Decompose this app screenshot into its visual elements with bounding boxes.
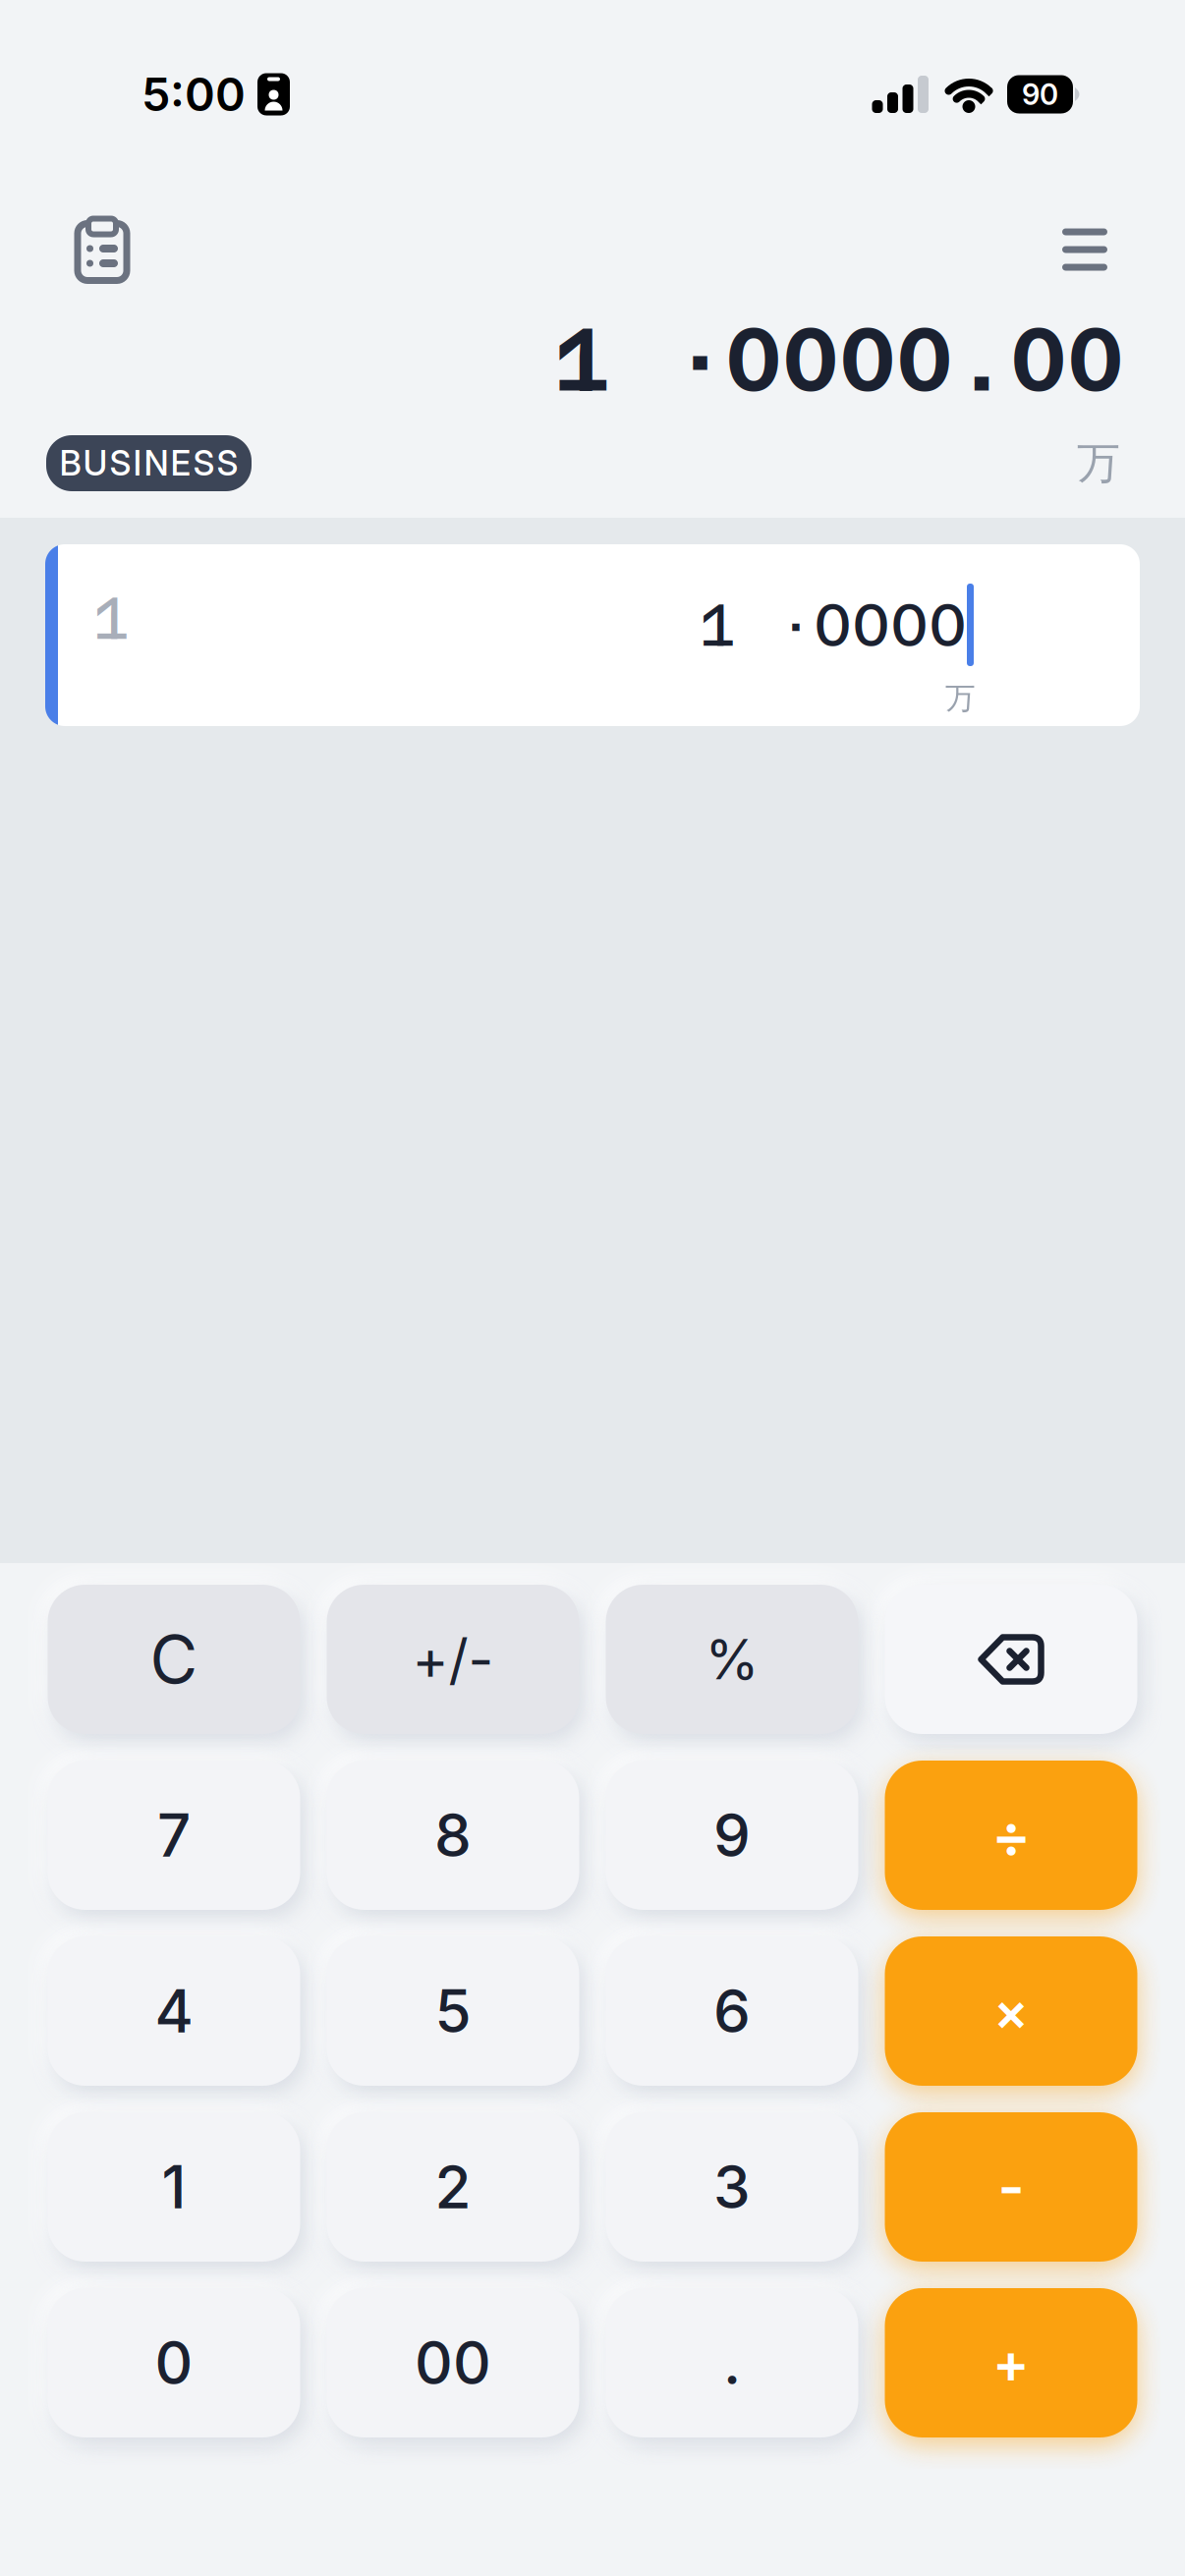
button[interactable]: 7 xyxy=(48,1761,300,1910)
staticText: 00 xyxy=(415,2327,491,2398)
button[interactable]: 8 xyxy=(327,1761,579,1910)
staticText: % xyxy=(705,1626,759,1693)
button[interactable]: 4 xyxy=(48,1936,300,2086)
button[interactable]: - xyxy=(885,2112,1137,2262)
staticText: +/- xyxy=(412,1626,494,1693)
staticText: 万 xyxy=(945,680,976,717)
staticText: 万 xyxy=(1077,437,1120,490)
staticText: × xyxy=(993,1979,1029,2043)
staticText: 3 xyxy=(713,2151,751,2223)
staticText: . xyxy=(723,2327,741,2398)
button[interactable]: 6 xyxy=(606,1936,858,2086)
button[interactable]: C xyxy=(48,1585,300,1734)
staticText: 5 xyxy=(435,1975,471,2047)
button[interactable]: History xyxy=(77,218,128,281)
staticText: 0 xyxy=(155,2327,193,2398)
button[interactable]: BUSINESS xyxy=(46,435,252,491)
button[interactable]: × xyxy=(885,1936,1137,2086)
button[interactable]: Delete xyxy=(885,1585,1137,1734)
button[interactable]: 2 xyxy=(327,2112,579,2262)
staticText: 2 xyxy=(435,2151,471,2223)
button[interactable]: 00 xyxy=(327,2288,579,2437)
staticText: 7 xyxy=(157,1800,191,1871)
button[interactable]: +/- xyxy=(327,1585,579,1734)
button[interactable]: ÷ xyxy=(885,1761,1137,1910)
button[interactable]: 9 xyxy=(606,1761,858,1910)
staticText: 6 xyxy=(713,1975,751,2047)
staticText: 5:00 xyxy=(141,67,246,122)
staticText: 1 ·0000.00 xyxy=(554,308,1124,411)
staticText: 1 xyxy=(92,584,131,652)
staticText: BUSINESS xyxy=(59,443,238,484)
button[interactable]: 3 xyxy=(606,2112,858,2262)
staticText: C xyxy=(150,1620,198,1699)
staticText: ÷ xyxy=(991,1800,1031,1871)
button[interactable]: + xyxy=(885,2288,1137,2437)
button[interactable]: % xyxy=(606,1585,858,1734)
button[interactable]: Menu xyxy=(1062,228,1107,271)
staticText: 90 xyxy=(1022,77,1058,112)
staticText: 1 ·0000 xyxy=(699,590,967,659)
staticText: 1 xyxy=(162,2151,186,2223)
button[interactable]: 0 xyxy=(48,2288,300,2437)
staticText: 4 xyxy=(155,1975,193,2047)
button[interactable]: . xyxy=(606,2288,858,2437)
staticText: 9 xyxy=(713,1800,751,1871)
staticText: - xyxy=(998,2152,1024,2222)
button[interactable]: 1 xyxy=(48,2112,300,2262)
staticText: 8 xyxy=(434,1800,472,1871)
button[interactable]: 5 xyxy=(327,1936,579,2086)
staticText: + xyxy=(992,2330,1030,2396)
